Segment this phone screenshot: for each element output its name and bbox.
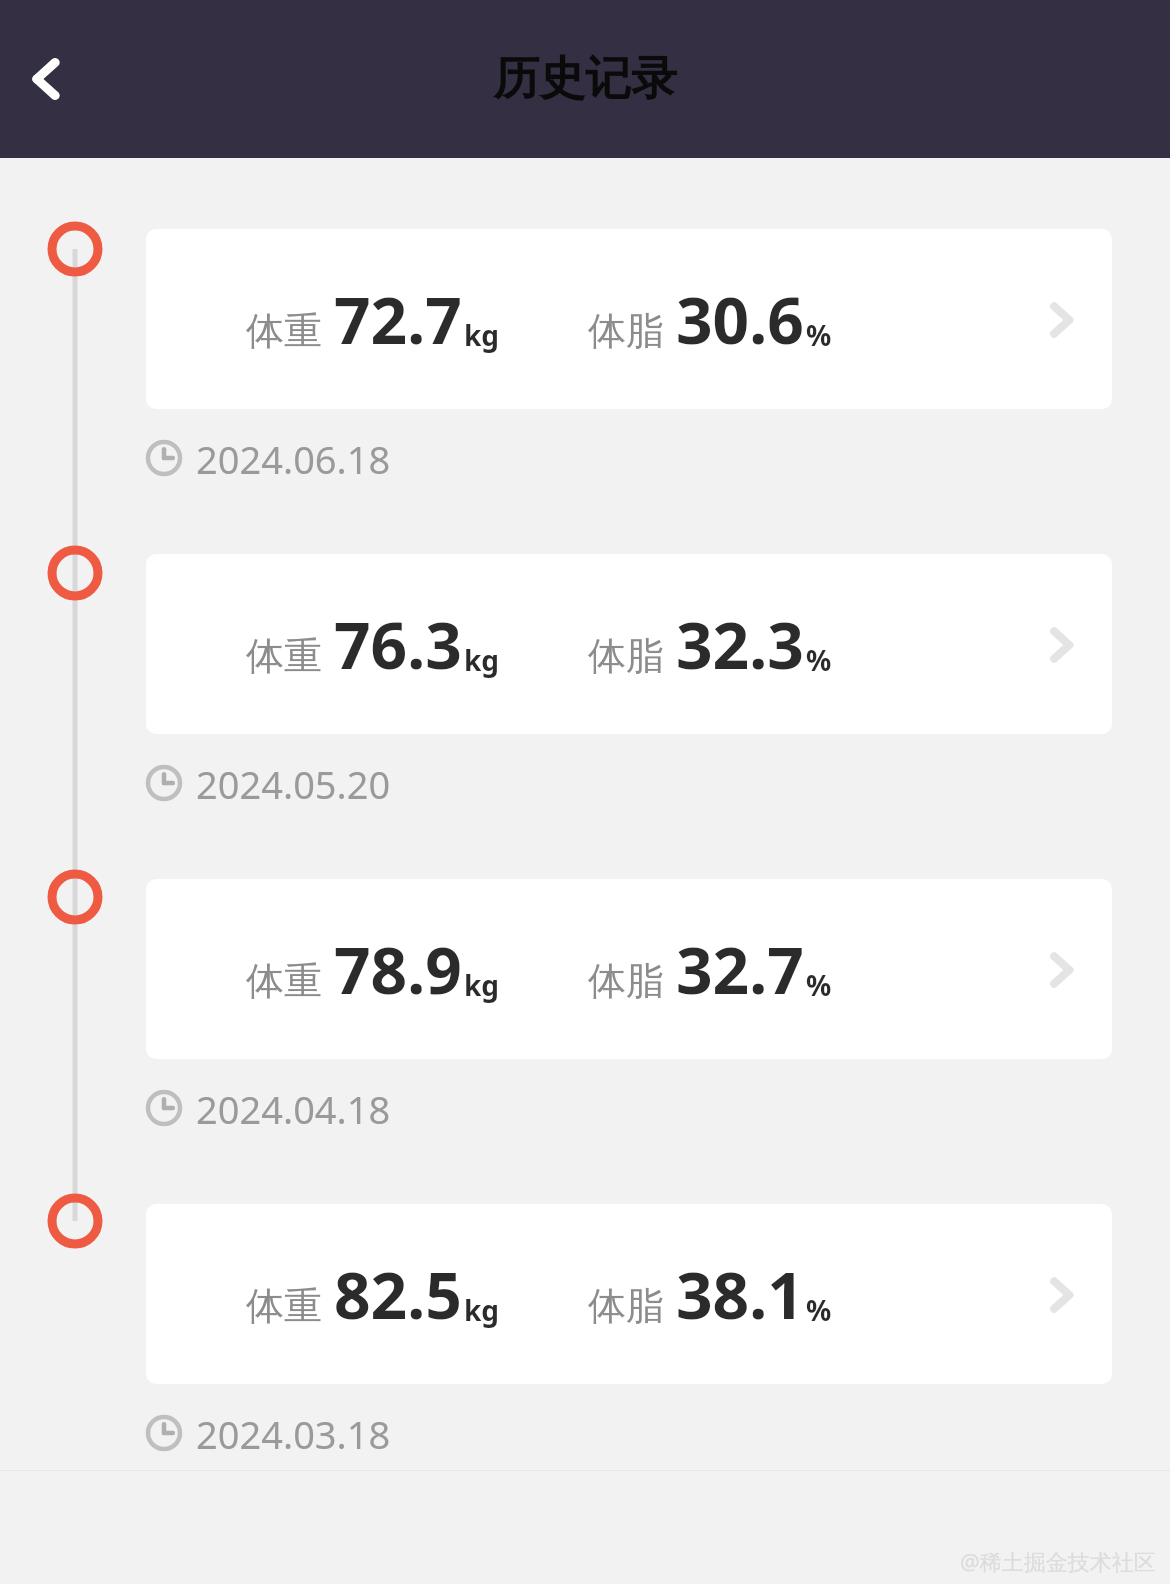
staticText: 72.7 <box>334 276 462 363</box>
staticText: @稀土掘金技术社区 <box>960 1546 1156 1576</box>
staticText: 2024.04.18 <box>196 1083 391 1133</box>
staticText: 体脂 <box>588 307 664 355</box>
staticText: % <box>806 1291 832 1329</box>
staticText: kg <box>464 641 500 679</box>
staticText: 2024.05.20 <box>196 758 391 808</box>
staticText: kg <box>464 1291 500 1329</box>
staticText: % <box>806 966 832 1004</box>
staticText: 78.9 <box>334 926 462 1013</box>
staticText: 体重 <box>246 957 322 1005</box>
button[interactable]: 体重 <box>146 879 1112 1059</box>
button[interactable]: 体重 <box>146 229 1112 409</box>
staticText: 30.6 <box>676 276 804 363</box>
button[interactable]: 体重 <box>146 554 1112 734</box>
staticText: 2024.06.18 <box>196 433 391 483</box>
staticText: 历史记录 <box>493 50 677 108</box>
staticText: 32.7 <box>676 926 804 1013</box>
staticText: 体重 <box>246 307 322 355</box>
staticText: 体重 <box>246 632 322 680</box>
staticText: 体脂 <box>588 1282 664 1330</box>
button[interactable]: 体重 <box>146 1204 1112 1384</box>
staticText: 体重 <box>246 1282 322 1330</box>
staticText: 体脂 <box>588 632 664 680</box>
staticText: % <box>806 316 832 354</box>
button[interactable]: Back <box>8 41 84 117</box>
staticText: % <box>806 641 832 679</box>
staticText: 32.3 <box>676 601 804 688</box>
staticText: 38.1 <box>676 1251 804 1338</box>
staticText: kg <box>464 316 500 354</box>
staticText: 76.3 <box>334 601 462 688</box>
staticText: 体脂 <box>588 957 664 1005</box>
staticText: kg <box>464 966 500 1004</box>
staticText: 2024.03.18 <box>196 1408 391 1458</box>
staticText: 82.5 <box>334 1251 462 1338</box>
